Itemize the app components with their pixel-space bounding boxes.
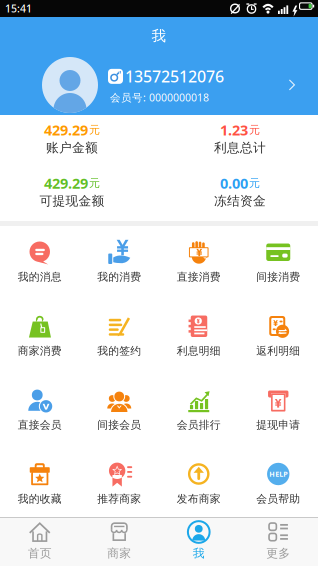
button[interactable]: 我的消费 (79, 226, 159, 300)
button[interactable]: 会员排行 (159, 374, 238, 448)
staticText: 0.00 (220, 173, 248, 193)
staticText: 提现申请 (256, 418, 300, 432)
staticText: 利息明细 (177, 344, 221, 358)
staticText: 利息总计 (214, 140, 266, 156)
staticText: 我的消息 (18, 270, 62, 284)
staticText: 我的签约 (97, 344, 141, 358)
button[interactable]: 更多 (238, 518, 318, 566)
staticText: 我的消费 (97, 270, 141, 284)
button[interactable]: 我的收藏 (0, 448, 79, 517)
staticText: 我 (151, 27, 166, 45)
staticText: 冻结资金 (214, 193, 266, 209)
button[interactable]: 推荐商家 (79, 448, 159, 517)
button[interactable]: 商家消费 (0, 300, 79, 374)
staticText: 返利明细 (256, 344, 300, 358)
staticText: 可提现金额 (39, 193, 104, 209)
staticText: 商家 (107, 546, 131, 561)
button[interactable]: HELP (238, 448, 318, 517)
button[interactable]: 我 (159, 518, 238, 566)
staticText: 首页 (28, 546, 52, 561)
staticText: 我 (193, 546, 205, 561)
staticText: 账户金额 (46, 140, 98, 156)
staticText: 我的收藏 (18, 492, 62, 506)
staticText: 直接消费 (177, 270, 221, 284)
staticText: 元 (249, 123, 260, 137)
staticText: 会员号: 0000000018 (110, 90, 209, 104)
staticText: 15:41 (5, 1, 32, 16)
button[interactable]: 13572512076 (0, 55, 318, 115)
staticText: HELP (269, 469, 287, 479)
button[interactable]: 我的消息 (0, 226, 79, 300)
staticText: 429.29 (44, 173, 88, 193)
staticText: 直接会员 (18, 418, 62, 432)
staticText: 1.23 (220, 120, 248, 140)
button[interactable]: 间接消费 (238, 226, 318, 300)
staticText: 间接会员 (97, 418, 141, 432)
button[interactable]: 直接消费 (159, 226, 238, 300)
staticText: 间接消费 (256, 270, 300, 284)
button[interactable]: 商家 (79, 518, 159, 566)
staticText: 13572512076 (125, 65, 224, 87)
staticText: 元 (249, 176, 260, 190)
button[interactable]: 直接会员 (0, 374, 79, 448)
button[interactable]: 返利明细 (238, 300, 318, 374)
button[interactable]: 我的签约 (79, 300, 159, 374)
staticText: 商家消费 (18, 344, 62, 358)
staticText: 会员排行 (177, 418, 221, 432)
button[interactable]: 发布商家 (159, 448, 238, 517)
button[interactable]: 间接会员 (79, 374, 159, 448)
staticText: 发布商家 (177, 492, 221, 506)
button[interactable]: 提现申请 (238, 374, 318, 448)
button[interactable]: 首页 (0, 518, 79, 566)
staticText: 推荐商家 (97, 492, 141, 506)
staticText: 元 (89, 123, 100, 137)
button[interactable]: 利息明细 (159, 300, 238, 374)
staticText: 429.29 (44, 120, 88, 140)
staticText: 元 (89, 176, 100, 190)
staticText: 会员帮助 (256, 492, 300, 506)
staticText: 更多 (266, 546, 290, 561)
